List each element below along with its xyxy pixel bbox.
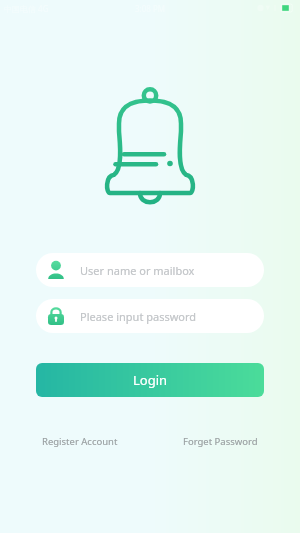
button[interactable]: Register Account [40, 432, 120, 451]
button[interactable]: Forget Password [181, 432, 260, 451]
staticText: User name or mailbox [80, 263, 195, 278]
button[interactable]: Login [36, 363, 264, 397]
other: App logo [100, 86, 200, 211]
staticText: Forget Password [183, 435, 258, 448]
button[interactable]: User name or mailbox [36, 253, 264, 287]
staticText: Please input password [80, 309, 197, 324]
staticText: Login [133, 371, 168, 389]
staticText: Register Account [42, 435, 118, 448]
button[interactable]: Please input password [36, 299, 264, 333]
